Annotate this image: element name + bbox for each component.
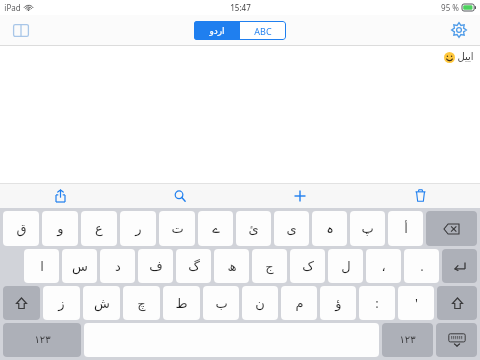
staticText: پ: [361, 221, 374, 236]
staticText: :: [375, 294, 379, 312]
button[interactable]: ع: [81, 211, 117, 246]
button[interactable]: :: [359, 286, 395, 320]
button[interactable]: س: [62, 249, 97, 283]
button[interactable]: ا: [24, 249, 59, 283]
button[interactable]: .: [404, 249, 439, 283]
staticText: iPad: [4, 2, 21, 13]
staticText: ب: [215, 296, 228, 311]
staticText: س: [72, 259, 88, 274]
staticText: د: [115, 259, 121, 274]
button[interactable]: ئ: [236, 211, 271, 246]
staticText: ز: [58, 296, 65, 311]
button[interactable]: ف: [138, 249, 173, 283]
button[interactable]: چ: [123, 286, 160, 320]
staticText: ہ: [326, 221, 334, 236]
staticText: گ: [188, 259, 200, 274]
button[interactable]: ے: [198, 211, 233, 246]
staticText: چ: [137, 296, 146, 311]
staticText: 15:47: [230, 2, 251, 13]
button[interactable]: ہ: [312, 211, 347, 246]
button[interactable]: ش: [83, 286, 120, 320]
staticText: ABC: [254, 25, 272, 37]
staticText: ج: [265, 259, 274, 274]
button[interactable]: ۱۲۳: [382, 323, 433, 357]
staticText: ۱۲۳: [34, 334, 51, 346]
staticText: ئ: [248, 221, 259, 236]
button[interactable]: Shift: [3, 286, 40, 320]
button[interactable]: Delete: [360, 183, 480, 208]
staticText: ۱۲۳: [399, 334, 416, 346]
staticText: ط: [175, 296, 188, 311]
button[interactable]: گ: [176, 249, 211, 283]
button[interactable]: أ: [388, 211, 423, 246]
button[interactable]: ک: [290, 249, 325, 283]
button[interactable]: ط: [163, 286, 200, 320]
staticText: ع: [95, 221, 103, 236]
staticText: ق: [16, 221, 27, 236]
button[interactable]: Shift: [437, 286, 477, 320]
button[interactable]: و: [42, 211, 78, 246]
staticText: ،: [381, 259, 386, 274]
staticText: اردو: [209, 26, 225, 36]
button[interactable]: م: [281, 286, 317, 320]
button[interactable]: ز: [43, 286, 80, 320]
staticText: ش: [94, 296, 110, 311]
button[interactable]: د: [100, 249, 135, 283]
staticText: ی: [286, 221, 297, 236]
button[interactable]: Share: [0, 183, 120, 208]
button[interactable]: ': [398, 286, 434, 320]
staticText: ': [415, 294, 418, 312]
staticText: ل: [341, 259, 351, 274]
button[interactable]: ر: [120, 211, 156, 246]
button[interactable]: ن: [242, 286, 278, 320]
button[interactable]: اردو: [194, 21, 240, 40]
button[interactable]: ل: [328, 249, 363, 283]
button[interactable]: Library: [6, 15, 36, 45]
button[interactable]: ؤ: [320, 286, 356, 320]
staticText: .: [420, 257, 424, 275]
staticText: و: [57, 221, 64, 236]
button[interactable]: پ: [350, 211, 385, 246]
button[interactable]: ی: [274, 211, 309, 246]
button[interactable]: Backspace: [426, 211, 477, 246]
button[interactable]: ABC: [240, 21, 286, 40]
staticText: ت: [171, 221, 184, 236]
staticText: 95 %: [441, 2, 459, 13]
button[interactable]: Return: [442, 249, 477, 283]
button[interactable]: ،: [366, 249, 401, 283]
button[interactable]: ۱۲۳: [3, 323, 81, 357]
button[interactable]: ت: [159, 211, 195, 246]
button[interactable]: Add: [240, 183, 360, 208]
staticText: ے: [212, 221, 220, 236]
staticText: أ: [404, 221, 408, 236]
staticText: ا: [40, 259, 44, 274]
staticText: اییل: [457, 51, 474, 63]
button[interactable]: Hide keyboard: [436, 323, 477, 357]
staticText: ر: [135, 221, 142, 236]
staticText: ؤ: [335, 296, 342, 311]
button[interactable]: ب: [203, 286, 239, 320]
button[interactable]: Search: [120, 183, 240, 208]
staticText: م: [295, 296, 304, 311]
staticText: ھ: [227, 259, 237, 274]
staticText: ف: [149, 259, 163, 274]
button[interactable]: Settings: [444, 15, 474, 45]
staticText: ک: [302, 259, 314, 274]
button[interactable]: ق: [3, 211, 39, 246]
button[interactable]: ھ: [214, 249, 249, 283]
staticText: ن: [255, 296, 265, 311]
button[interactable]: ج: [252, 249, 287, 283]
